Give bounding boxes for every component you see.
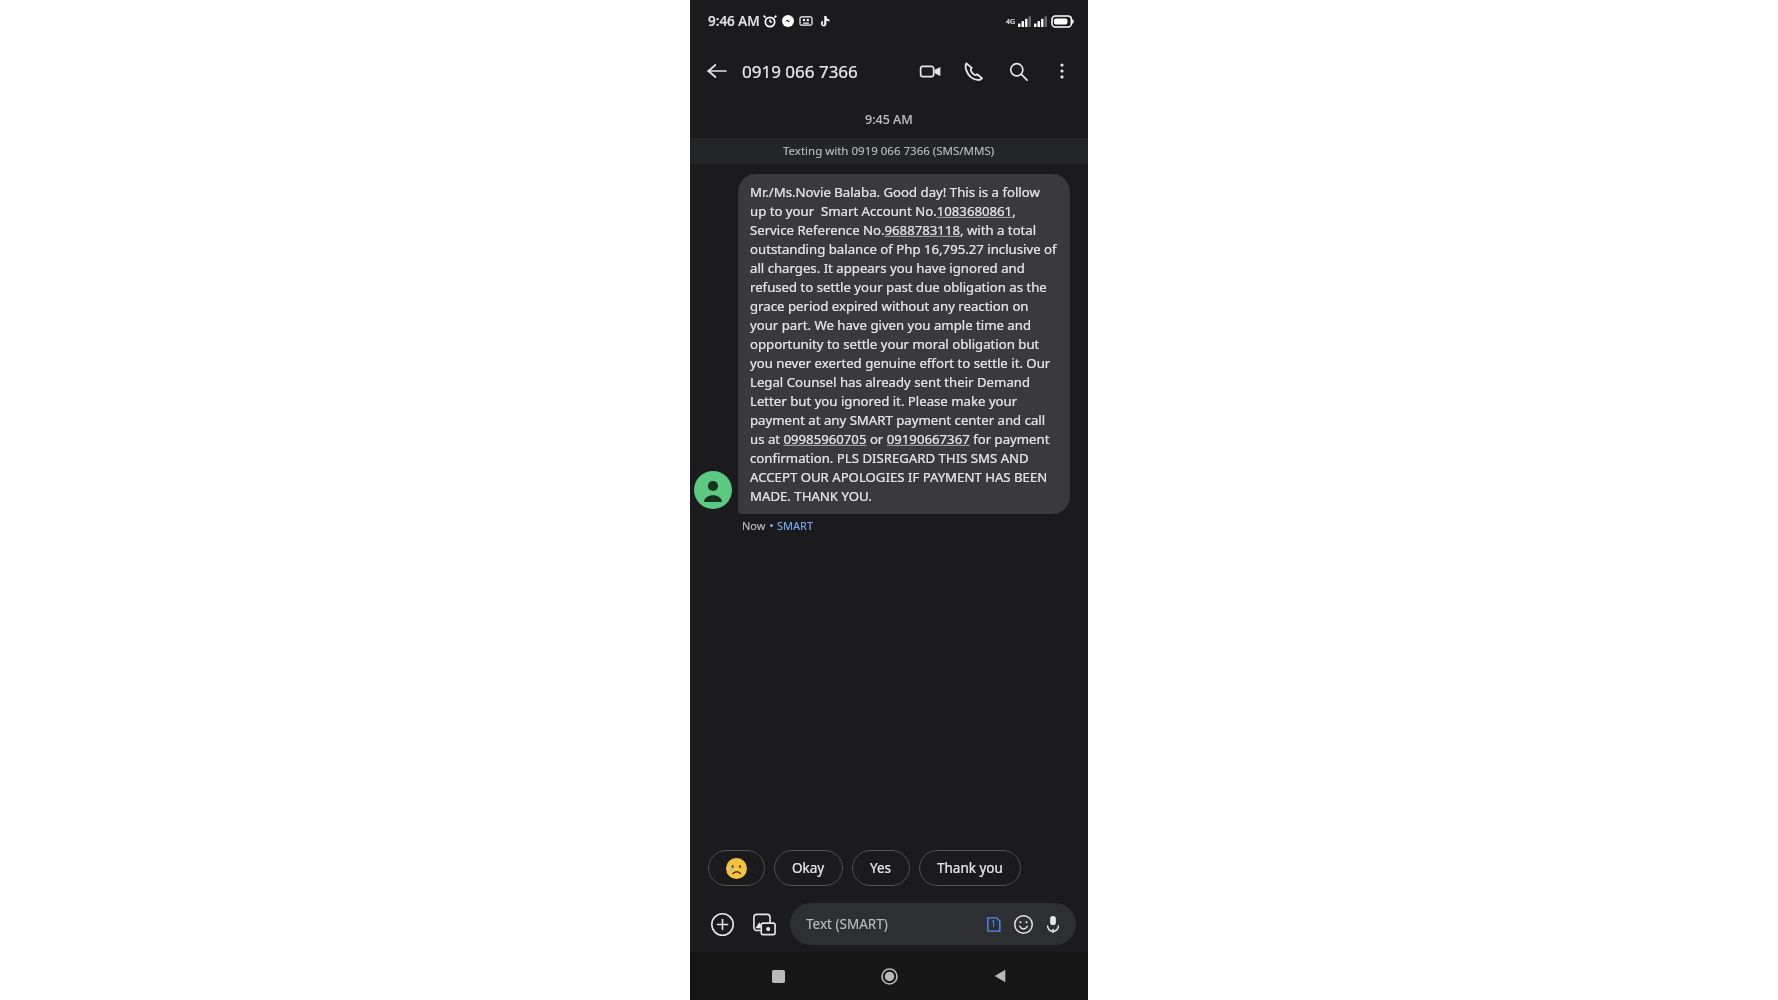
staticText: Now: [742, 518, 766, 533]
button[interactable]: Emoji: [1010, 911, 1036, 937]
button[interactable]: Video call: [908, 49, 952, 93]
button[interactable]: Back: [696, 50, 738, 92]
button[interactable]: Gallery and camera: [744, 904, 784, 944]
staticText: 9:45 AM: [865, 111, 913, 128]
button[interactable]: Add attachment: [702, 904, 742, 944]
staticText: 0919 066 7366: [742, 60, 858, 83]
button[interactable]: [708, 850, 765, 886]
staticText: 1: [991, 918, 996, 930]
button[interactable]: Okay: [774, 850, 843, 886]
staticText: Mr./Ms.Novie Balaba. Good day! This is a…: [750, 183, 1058, 505]
button[interactable]: Text (SMART): [790, 903, 1076, 945]
button[interactable]: Thank you: [919, 850, 1021, 886]
staticText: Texting with 0919 066 7366 (SMS/MMS): [783, 143, 995, 159]
button[interactable]: Home: [866, 953, 912, 999]
button[interactable]: Yes: [852, 850, 910, 886]
button[interactable]: Search: [996, 49, 1040, 93]
staticText: Thank you: [937, 859, 1003, 877]
staticText: 4G: [1006, 17, 1016, 27]
button[interactable]: Back: [977, 953, 1023, 999]
staticText: Okay: [792, 859, 825, 877]
button[interactable]: Voice input: [1040, 911, 1066, 937]
button[interactable]: 0919 066 7366: [742, 60, 908, 83]
staticText: 9:46 AM: [708, 12, 760, 30]
button[interactable]: Recent apps: [755, 953, 801, 999]
button[interactable]: SIM 1: [982, 913, 1004, 935]
staticText: SMART: [777, 518, 814, 533]
staticText: Yes: [870, 859, 892, 877]
staticText: Text (SMART): [806, 915, 888, 933]
button[interactable]: More options: [1040, 49, 1084, 93]
button[interactable]: Mr./Ms.Novie Balaba. Good day! This is a…: [738, 174, 1070, 514]
button[interactable]: Call: [952, 49, 996, 93]
